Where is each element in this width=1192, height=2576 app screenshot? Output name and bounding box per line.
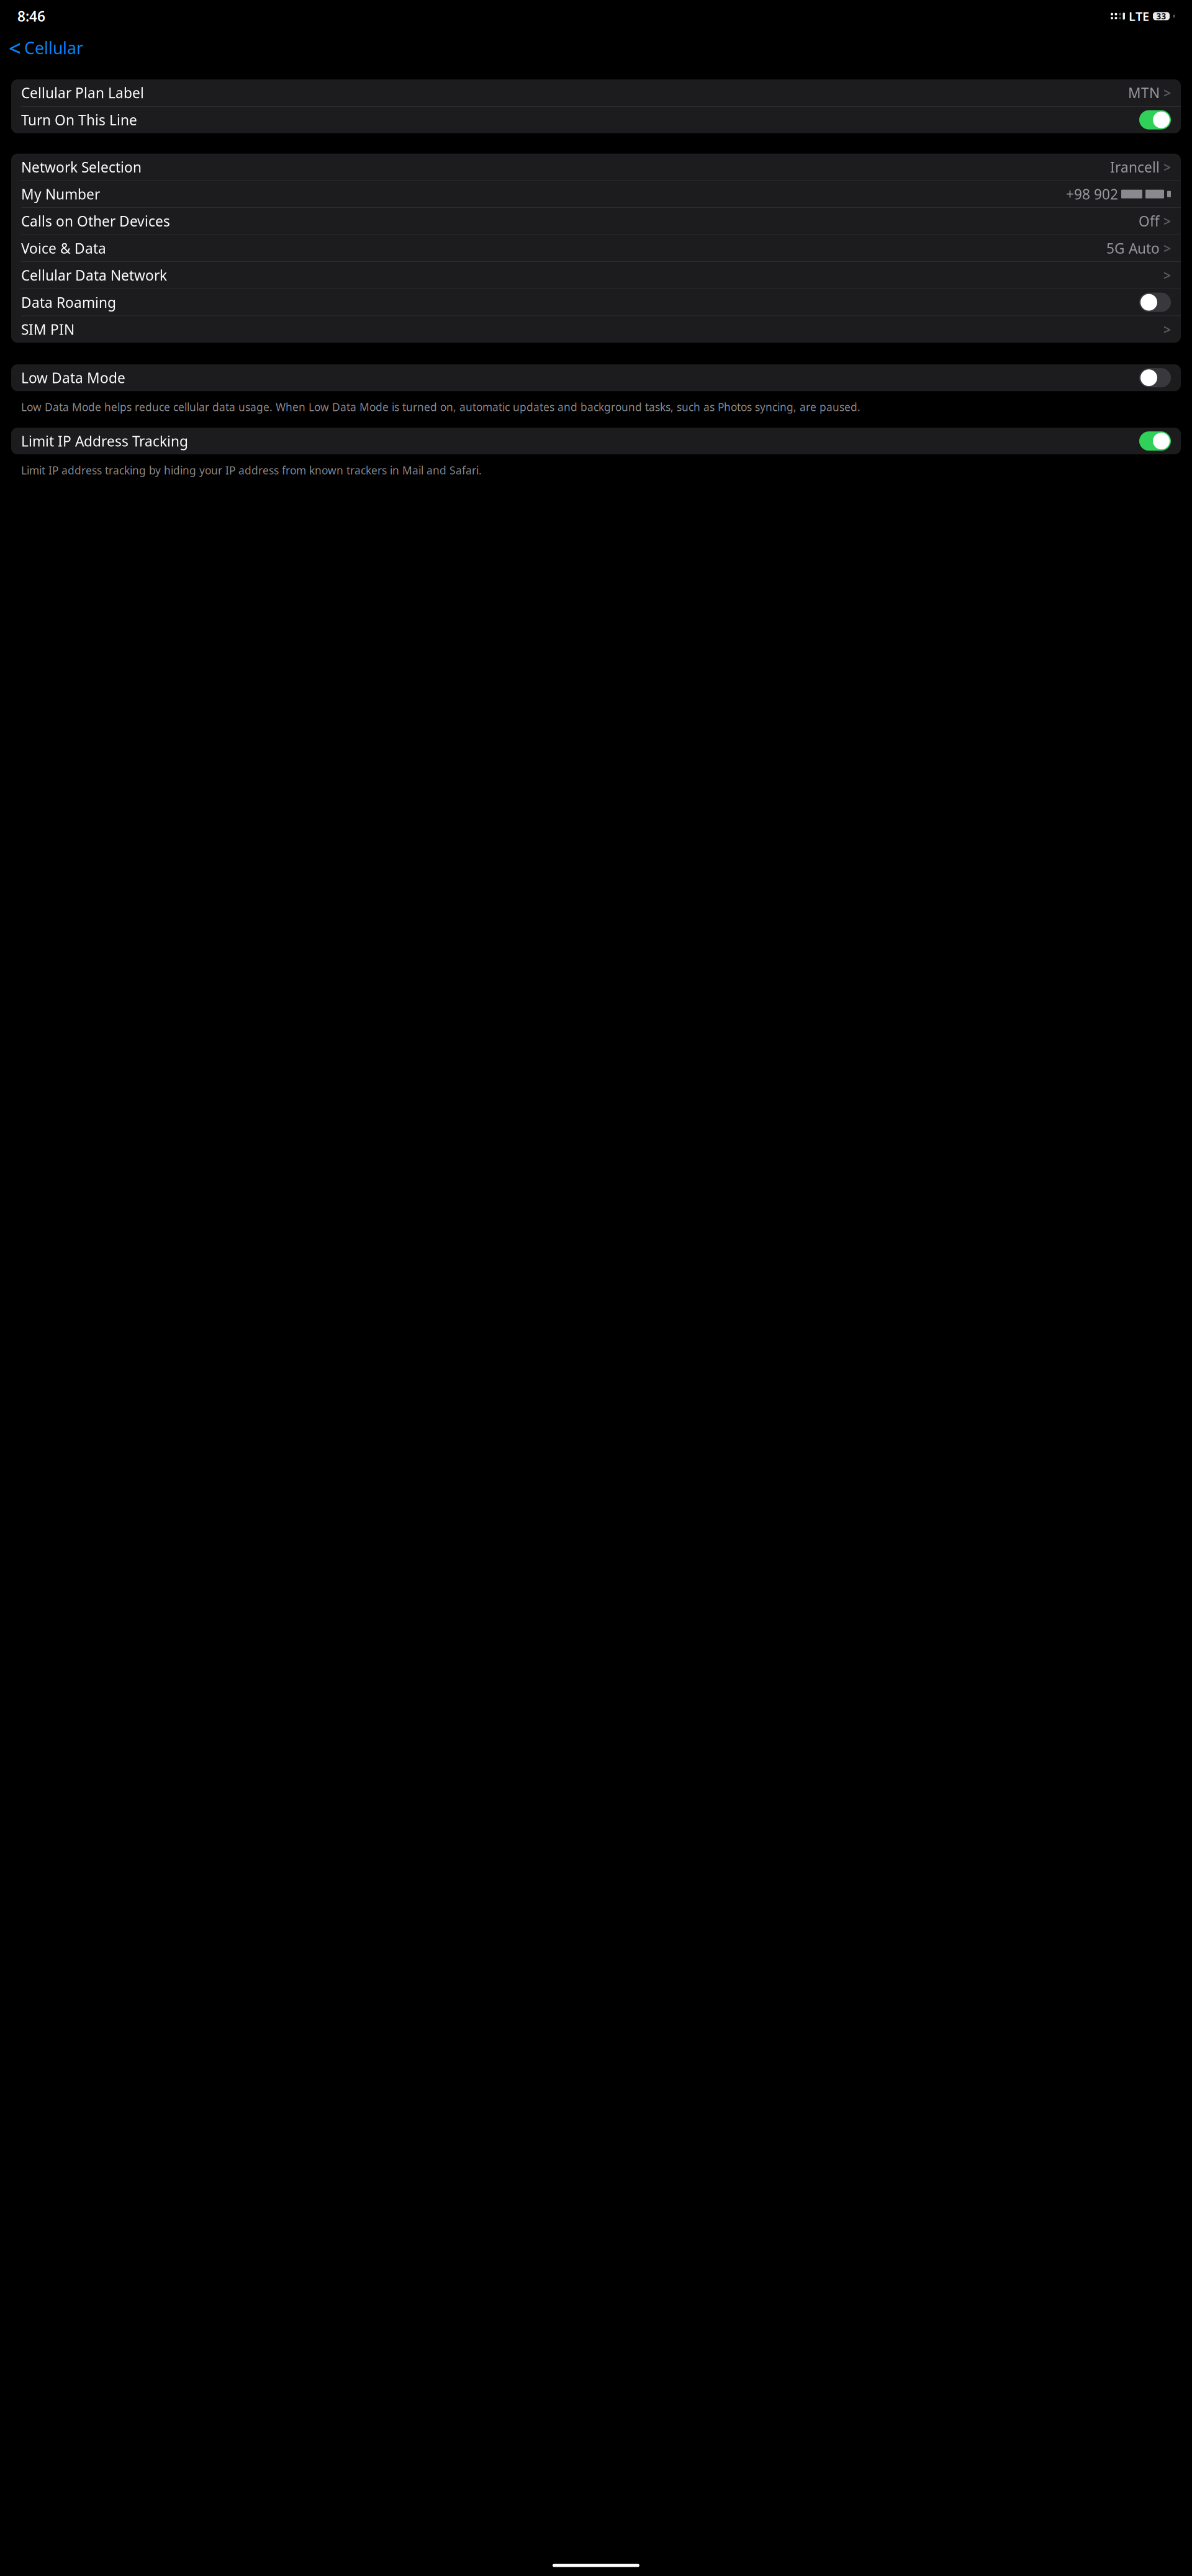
button[interactable]: My Number: [11, 181, 1181, 207]
staticText: 5G Auto: [1106, 239, 1160, 257]
button[interactable]: Turn On This Line: [11, 106, 1181, 133]
staticText: <: [9, 34, 21, 62]
staticText: >: [1163, 158, 1171, 176]
staticText: Voice & Data: [21, 239, 106, 257]
staticText: Cellular Data Network: [21, 266, 167, 285]
button[interactable]: Voice & Data: [11, 235, 1181, 262]
staticText: MTN: [1128, 83, 1160, 102]
staticText: My Number: [21, 185, 100, 203]
staticText: +98 902: [1066, 185, 1118, 203]
button[interactable]: Low Data Mode: [11, 364, 1181, 391]
button[interactable]: Cellular Plan Label: [11, 79, 1181, 106]
staticText: >: [1163, 212, 1171, 230]
staticText: Irancell: [1110, 158, 1160, 176]
staticText: Low Data Mode: [21, 368, 125, 387]
staticText: 33: [1156, 11, 1166, 22]
button[interactable]: Cellular Data Network: [11, 262, 1181, 289]
staticText: Network Selection: [21, 158, 142, 176]
staticText: Low Data Mode helps reduce cellular data…: [21, 400, 860, 414]
button[interactable]: <: [4, 34, 88, 61]
staticText: Limit IP Address Tracking: [21, 432, 188, 450]
button[interactable]: Calls on Other Devices: [11, 208, 1181, 234]
staticText: Cellular: [24, 37, 83, 59]
staticText: >: [1163, 266, 1171, 284]
staticText: >: [1163, 321, 1171, 338]
button[interactable]: SIM PIN: [11, 316, 1181, 343]
staticText: Off: [1139, 212, 1160, 230]
staticText: 8:46: [17, 7, 45, 25]
button[interactable]: Network Selection: [11, 154, 1181, 180]
staticText: Cellular Plan Label: [21, 83, 144, 102]
staticText: Calls on Other Devices: [21, 212, 170, 230]
button[interactable]: Data Roaming: [11, 289, 1181, 316]
staticText: Turn On This Line: [21, 110, 137, 129]
staticText: >: [1163, 239, 1171, 257]
staticText: Limit IP address tracking by hiding your…: [21, 463, 482, 477]
staticText: Data Roaming: [21, 293, 116, 312]
staticText: SIM PIN: [21, 320, 74, 339]
staticText: >: [1163, 84, 1171, 102]
button[interactable]: Limit IP Address Tracking: [11, 428, 1181, 454]
staticText: LTE: [1129, 8, 1149, 24]
